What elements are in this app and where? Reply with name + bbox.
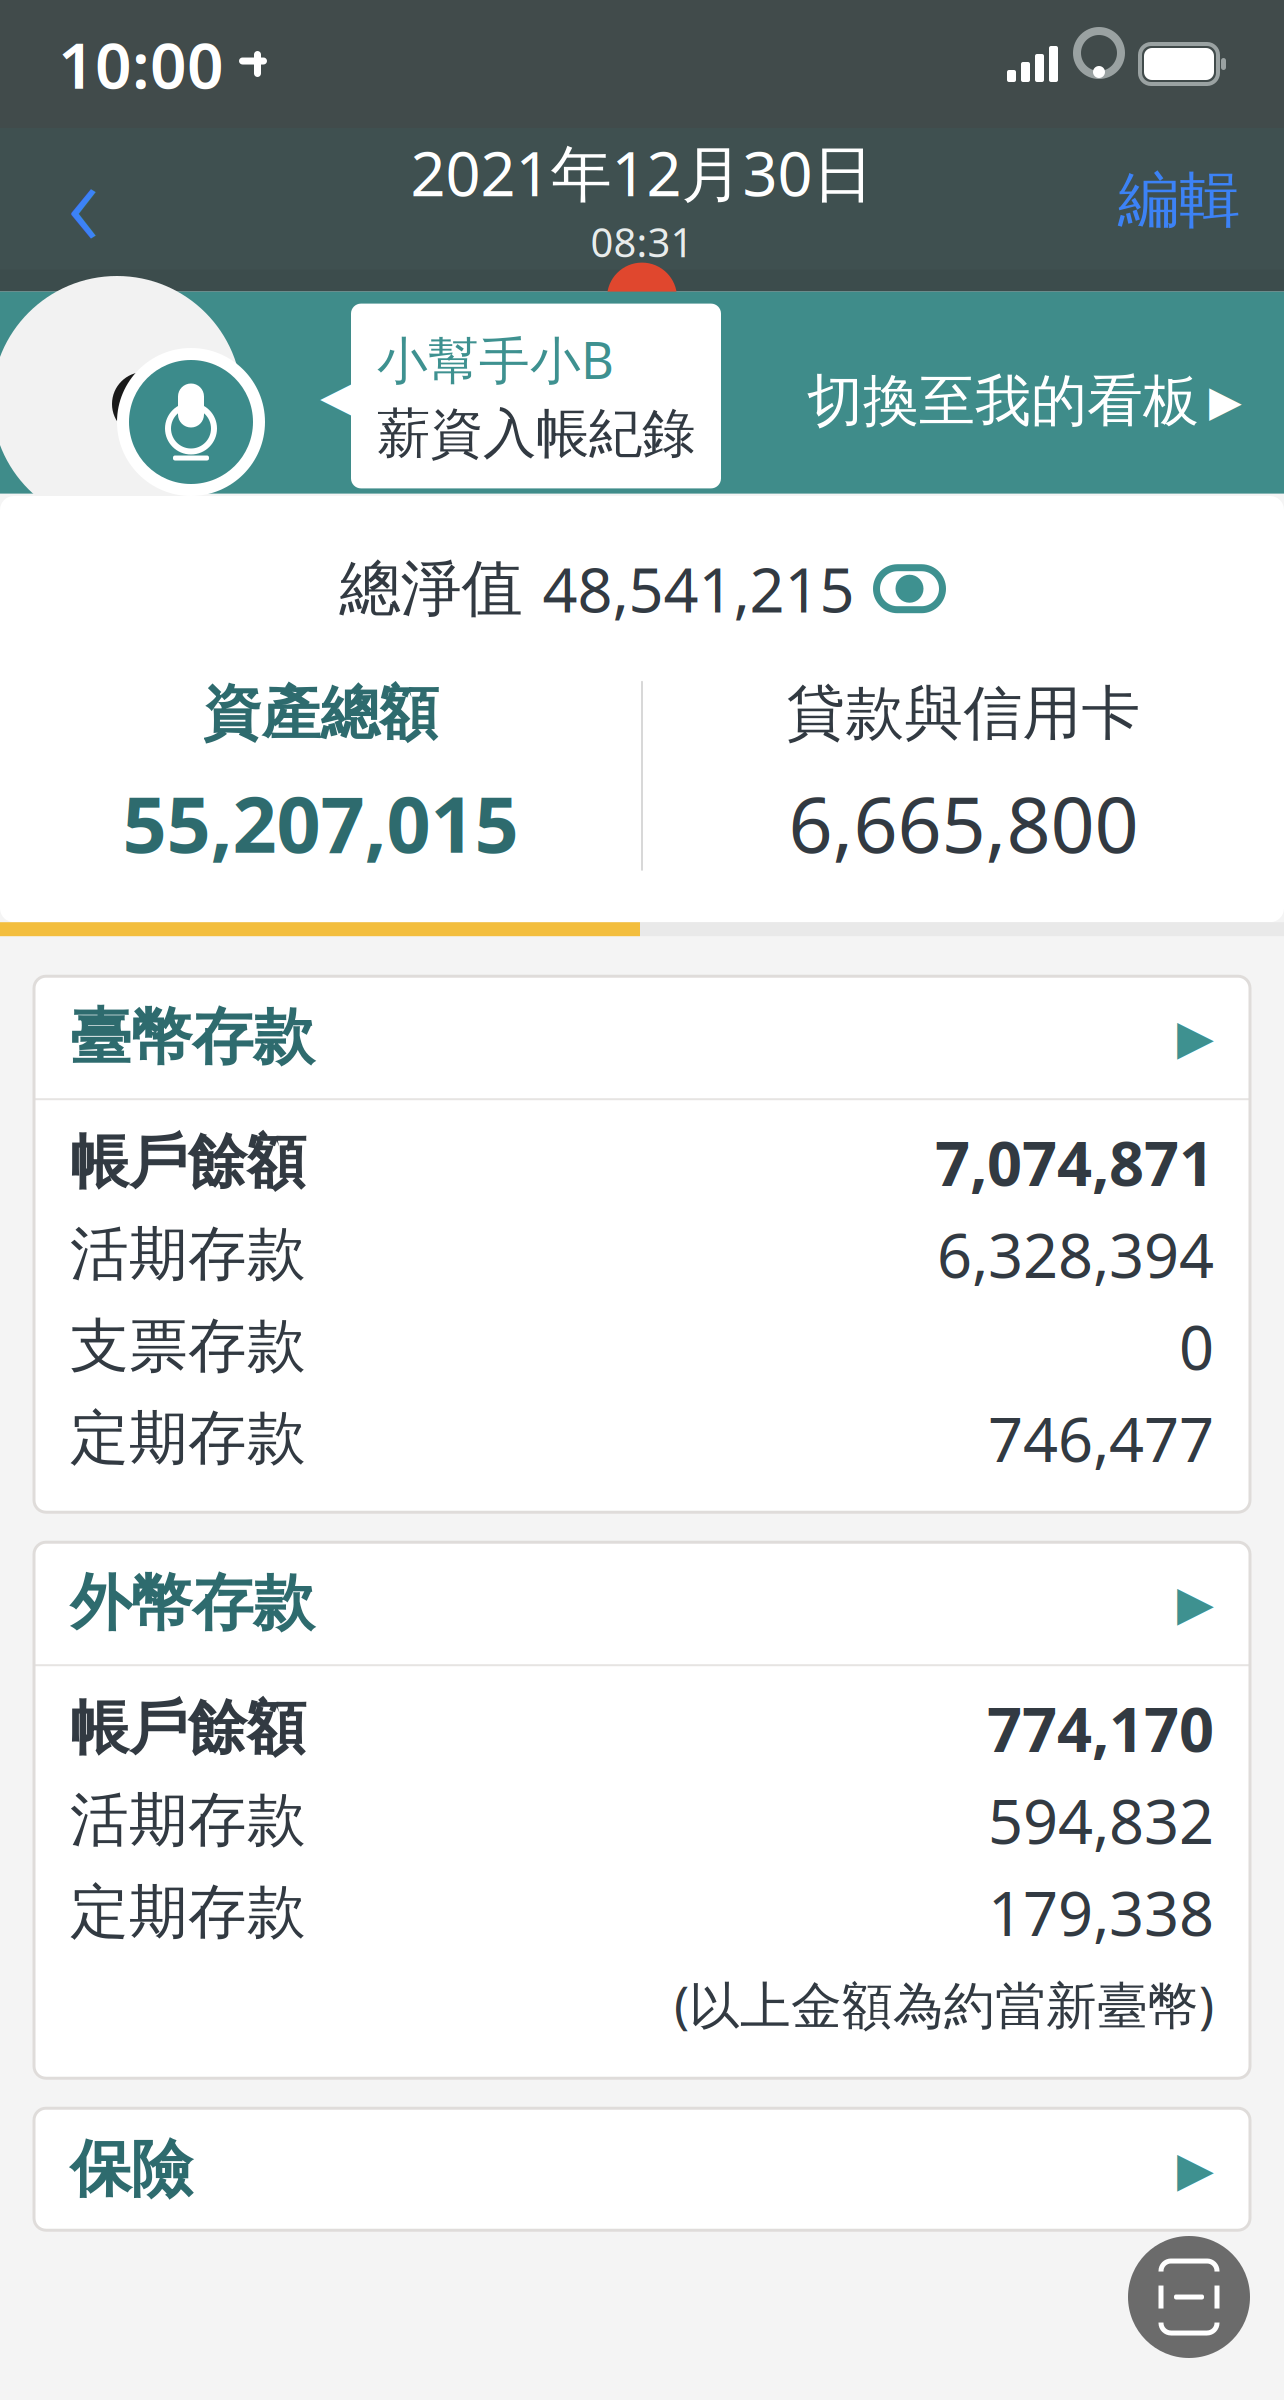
staticText: 帳戶餘額 [70, 1692, 306, 1764]
staticText: 保險 [70, 2131, 192, 2207]
staticText: 6,328,394 [937, 1213, 1214, 1295]
staticText: ◀ [320, 369, 357, 423]
staticText: ▼ [192, 381, 223, 427]
staticText: 外幣存款 [70, 1565, 314, 1641]
staticText: ▶ [1177, 1010, 1214, 1064]
staticText: 臺幣存款 [70, 999, 314, 1075]
staticText: 切換至我的看板 [807, 367, 1199, 435]
staticText: 定期存款 [70, 1876, 306, 1948]
staticText: 活期存款 [70, 1784, 306, 1856]
staticText: 資產總額 [202, 677, 438, 749]
staticText: 薪資入帳紀錄 [377, 401, 695, 466]
staticText: 08:31 [590, 215, 693, 268]
staticText: 0 [1179, 1305, 1214, 1387]
staticText: 支票存款 [70, 1310, 306, 1382]
button[interactable]: 語音助理 [117, 348, 265, 496]
staticText: 179,338 [988, 1871, 1214, 1953]
staticText: 編輯 [1118, 162, 1240, 238]
staticText: 774,170 [987, 1687, 1214, 1769]
staticText: 10:00 [58, 21, 224, 106]
button[interactable]: 資產總額 [0, 663, 641, 888]
button[interactable]: 臺幣存款 [34, 976, 1250, 1098]
staticText: ▶ [1177, 2142, 1214, 2196]
staticText: 小幫手小B [377, 326, 614, 393]
staticText: 7,074,871 [935, 1121, 1214, 1203]
staticText: 貸款與信用卡 [786, 677, 1140, 749]
staticText: ‹ [67, 119, 100, 281]
staticText: ▶ [1177, 1576, 1214, 1630]
staticText: 2021年12月30日 [410, 132, 873, 213]
button[interactable]: ◀ [320, 304, 721, 498]
staticText: (以上金額為約當新臺幣) [674, 1971, 1214, 2038]
staticText: 48,541,215 [542, 548, 854, 629]
staticText: 活期存款 [70, 1218, 306, 1290]
button[interactable]: 編輯 [1098, 140, 1260, 260]
staticText: 帳戶餘額 [70, 1126, 306, 1198]
button[interactable]: 返回 [24, 140, 144, 260]
staticText: ▶ [1209, 377, 1242, 425]
staticText: 總淨值 [339, 551, 522, 626]
button[interactable]: 切換至我的看板 [791, 343, 1258, 459]
button[interactable]: 掃描 [1128, 2236, 1250, 2358]
staticText: 594,832 [988, 1779, 1214, 1861]
button[interactable]: 貸款與信用卡 [643, 663, 1284, 888]
button[interactable]: 隱藏總淨值 [339, 496, 944, 663]
button[interactable]: 外幣存款 [34, 1542, 1250, 1664]
staticText: 6,665,800 [788, 771, 1138, 874]
button[interactable]: 保險 [34, 2108, 1250, 2230]
staticText: 55,207,015 [122, 771, 518, 874]
staticText: 746,477 [988, 1397, 1214, 1479]
staticText: 定期存款 [70, 1402, 306, 1474]
